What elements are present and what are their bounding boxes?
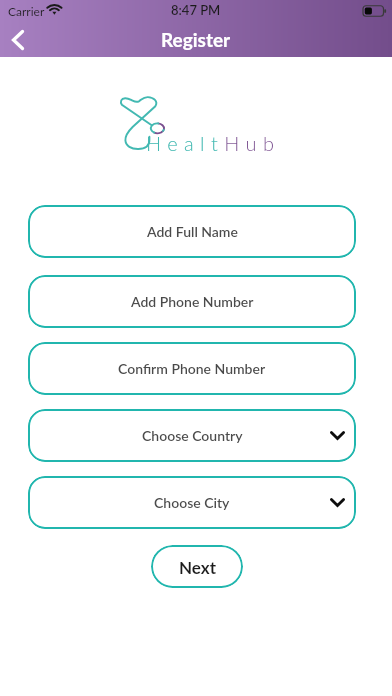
- staticText: Choose City: [154, 494, 230, 511]
- button[interactable]: Next: [151, 545, 243, 588]
- button[interactable]: Add Phone Number: [28, 275, 356, 328]
- button[interactable]: Choose Country: [28, 409, 356, 462]
- staticText: Choose Country: [142, 427, 243, 444]
- staticText: Register: [161, 28, 231, 51]
- button[interactable]: Confirm Phone Number: [28, 342, 356, 395]
- staticText: 8:47 PM: [171, 2, 221, 18]
- staticText: Next: [179, 557, 216, 577]
- button[interactable]: Choose City: [28, 476, 356, 529]
- staticText: HealtHub: [146, 131, 281, 155]
- staticText: Add Phone Number: [131, 293, 254, 310]
- staticText: Confirm Phone Number: [118, 360, 266, 377]
- button[interactable]: Back: [2, 24, 34, 56]
- staticText: Carrier: [8, 4, 45, 18]
- staticText: Add Full Name: [147, 223, 238, 240]
- button[interactable]: Add Full Name: [28, 205, 356, 258]
